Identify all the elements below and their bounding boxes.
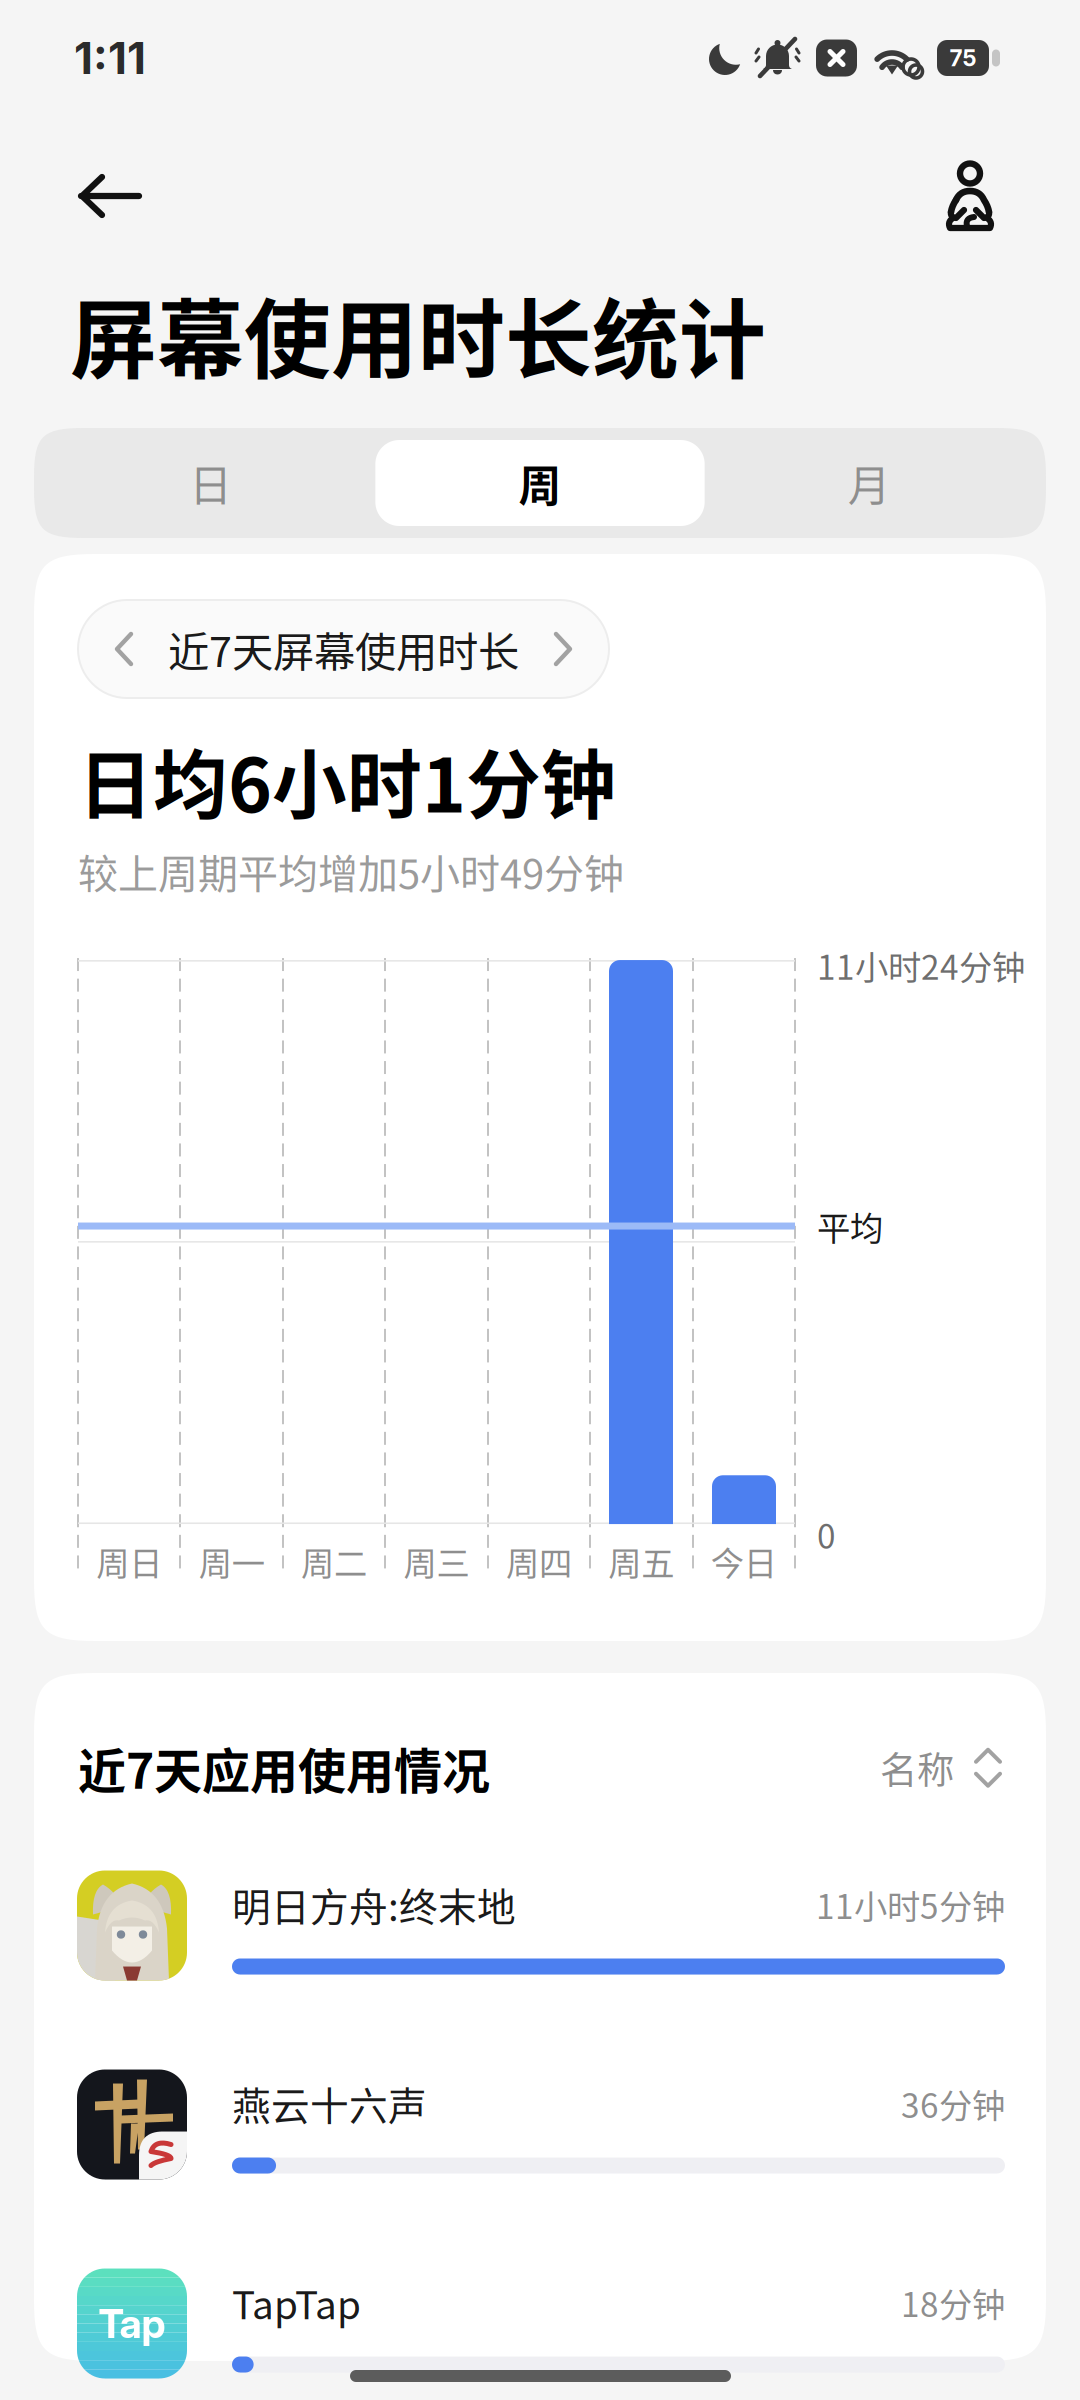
- button[interactable]: 周: [375, 440, 705, 526]
- staticText: 屏幕使用时长统计: [70, 271, 766, 396]
- staticText: 1:11: [74, 31, 146, 85]
- button[interactable]: 名称: [880, 1741, 1002, 1795]
- staticText: 周一: [199, 1537, 265, 1585]
- staticText: 周五: [608, 1537, 674, 1585]
- staticText: 燕云十六声: [232, 2075, 427, 2131]
- staticText: TapTap: [232, 2274, 361, 2330]
- staticText: 11小时5分钟: [816, 1880, 1005, 1929]
- staticText: 周四: [506, 1537, 572, 1585]
- staticText: 今日: [711, 1537, 777, 1585]
- staticText: 平均: [817, 1202, 883, 1250]
- button[interactable]: 月: [705, 440, 1034, 526]
- staticText: 周三: [403, 1537, 469, 1585]
- button[interactable]: 日: [46, 440, 375, 526]
- staticText: 11小时24分钟: [817, 941, 1025, 989]
- button[interactable]: 专注模式: [901, 152, 1080, 240]
- staticText: 日: [189, 452, 232, 514]
- staticText: 周日: [96, 1537, 162, 1585]
- button[interactable]: Tap: [34, 2268, 1046, 2378]
- staticText: 月: [848, 452, 891, 514]
- button[interactable]: 近7天屏幕使用时长: [78, 600, 609, 698]
- staticText: 周: [518, 452, 561, 514]
- staticText: 0: [817, 1510, 836, 1558]
- button[interactable]: 明日方舟:终末地: [34, 1870, 1046, 1980]
- staticText: 18分钟: [901, 2278, 1005, 2327]
- staticText: 较上周期平均增加5小时49分钟: [78, 842, 624, 900]
- staticText: 名称: [880, 1741, 954, 1795]
- staticText: 近7天屏幕使用时长: [168, 619, 519, 679]
- staticText: 36分钟: [901, 2079, 1005, 2128]
- staticText: 近7天应用使用情况: [78, 1733, 490, 1802]
- staticText: 明日方舟:终末地: [232, 1876, 516, 1932]
- staticText: 周二: [301, 1537, 367, 1585]
- staticText: Tap: [98, 2299, 165, 2348]
- button[interactable]: 燕云十六声: [34, 2069, 1046, 2179]
- staticText: 日均6小时1分钟: [78, 726, 616, 834]
- staticText: 75: [949, 44, 976, 72]
- button[interactable]: 返回: [0, 152, 182, 240]
